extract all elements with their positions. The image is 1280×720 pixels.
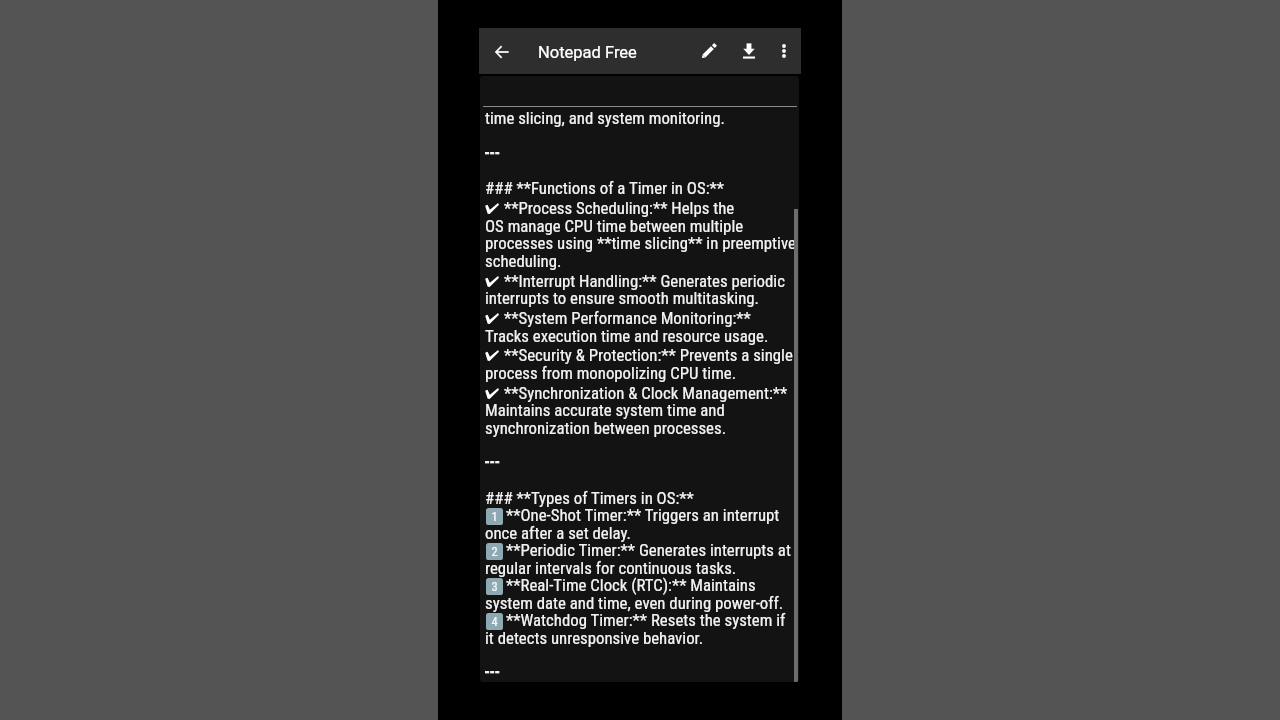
staticText: ### **Types of Timers in OS:** [485,488,694,508]
staticText: OS manage CPU time between multiple [485,216,744,236]
staticText: regular intervals for continuous tasks. [485,558,737,578]
staticText: 2 [491,544,498,559]
staticText: **Watchdog Timer:** Resets the system if [506,610,786,630]
staticText: **Interrupt Handling:** Generates period… [504,271,785,291]
staticText: 3 [491,579,498,594]
staticText: process from monopolizing CPU time. [485,363,737,383]
staticText: once after a set delay. [485,523,632,543]
staticText: scheduling. [485,251,562,271]
staticText: **Synchronization & Clock Management:** [504,383,788,403]
staticText: 1 [491,509,498,524]
staticText: **System Performance Monitoring:** [504,308,751,328]
staticText: Notepad Free [538,43,637,62]
staticText: processes using **time slicing** in pree… [485,233,796,253]
staticText: 4 [491,614,498,629]
button[interactable]: Navigate up [479,29,524,75]
staticText: **Process Scheduling:** Helps the [504,198,735,218]
staticText: ### **Functions of a Timer in OS:** [485,178,725,198]
staticText: it detects unresponsive behavior. [485,628,704,648]
staticText: synchronization between processes. [485,418,727,438]
staticText: Tracks execution time and resource usage… [485,326,769,346]
staticText: Maintains accurate system time and [485,400,725,420]
button[interactable]: More options [767,28,801,74]
staticText: interrupts to ensure smooth multitasking… [485,288,760,308]
staticText: time slicing, and system monitoring. [485,108,725,128]
staticText: **Periodic Timer:** Generates interrupts… [506,540,791,560]
staticText: **Real-Time Clock (RTC):** Maintains [506,575,756,595]
staticText: system date and time, even during power-… [485,593,784,613]
button[interactable]: Download [730,28,767,74]
button[interactable]: Edit [688,28,729,74]
staticText: **One-Shot Timer:** Triggers an interrup… [506,505,780,525]
staticText: **Security & Protection:** Prevents a si… [504,345,793,365]
